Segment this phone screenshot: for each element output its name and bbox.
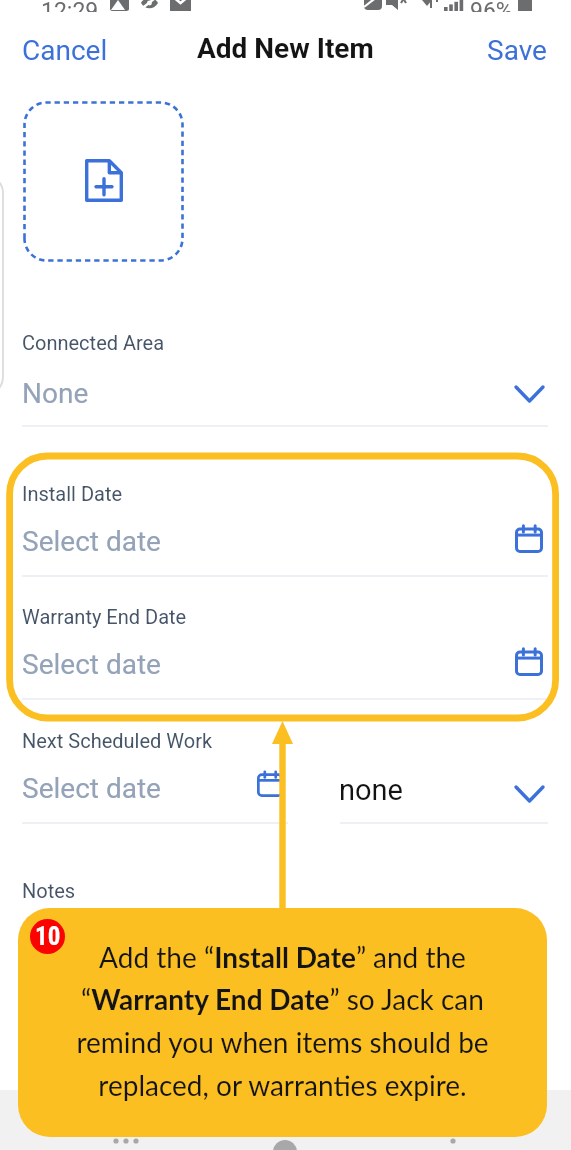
staticText: Add the “Install Date” and the “Warranty…: [18, 940, 547, 1102]
staticText: Install Date: [22, 482, 123, 505]
staticText: Next Scheduled Work: [22, 729, 213, 752]
staticText: Select date: [22, 648, 161, 681]
button[interactable]: Select connected area: [498, 372, 560, 416]
staticText: 96%: [470, 0, 513, 12]
staticText: none: [339, 773, 403, 807]
staticText: Cancel: [22, 34, 108, 62]
button[interactable]: Add attachment: [23, 101, 184, 262]
staticText: Add New Item: [197, 32, 374, 65]
staticText: Select date: [22, 525, 161, 558]
staticText: Save: [487, 34, 547, 62]
staticText: Select date: [22, 772, 161, 805]
button[interactable]: Pick warranty end date: [504, 639, 554, 685]
button[interactable]: Pick install date: [504, 516, 554, 562]
staticText: Warranty End Date: [22, 605, 187, 628]
staticText: 12:29: [41, 0, 99, 12]
button[interactable]: Select recurrence: [498, 772, 560, 816]
staticText: Connected Area: [22, 331, 165, 354]
button[interactable]: Add the “Install Date” and the “Warranty…: [18, 908, 547, 1137]
button[interactable]: Pick next scheduled date: [248, 762, 292, 806]
button[interactable]: Cancel: [0, 24, 134, 72]
staticText: 10: [35, 922, 61, 951]
staticText: None: [22, 377, 89, 410]
button[interactable]: Save: [461, 24, 571, 72]
staticText: Notes: [22, 879, 76, 902]
